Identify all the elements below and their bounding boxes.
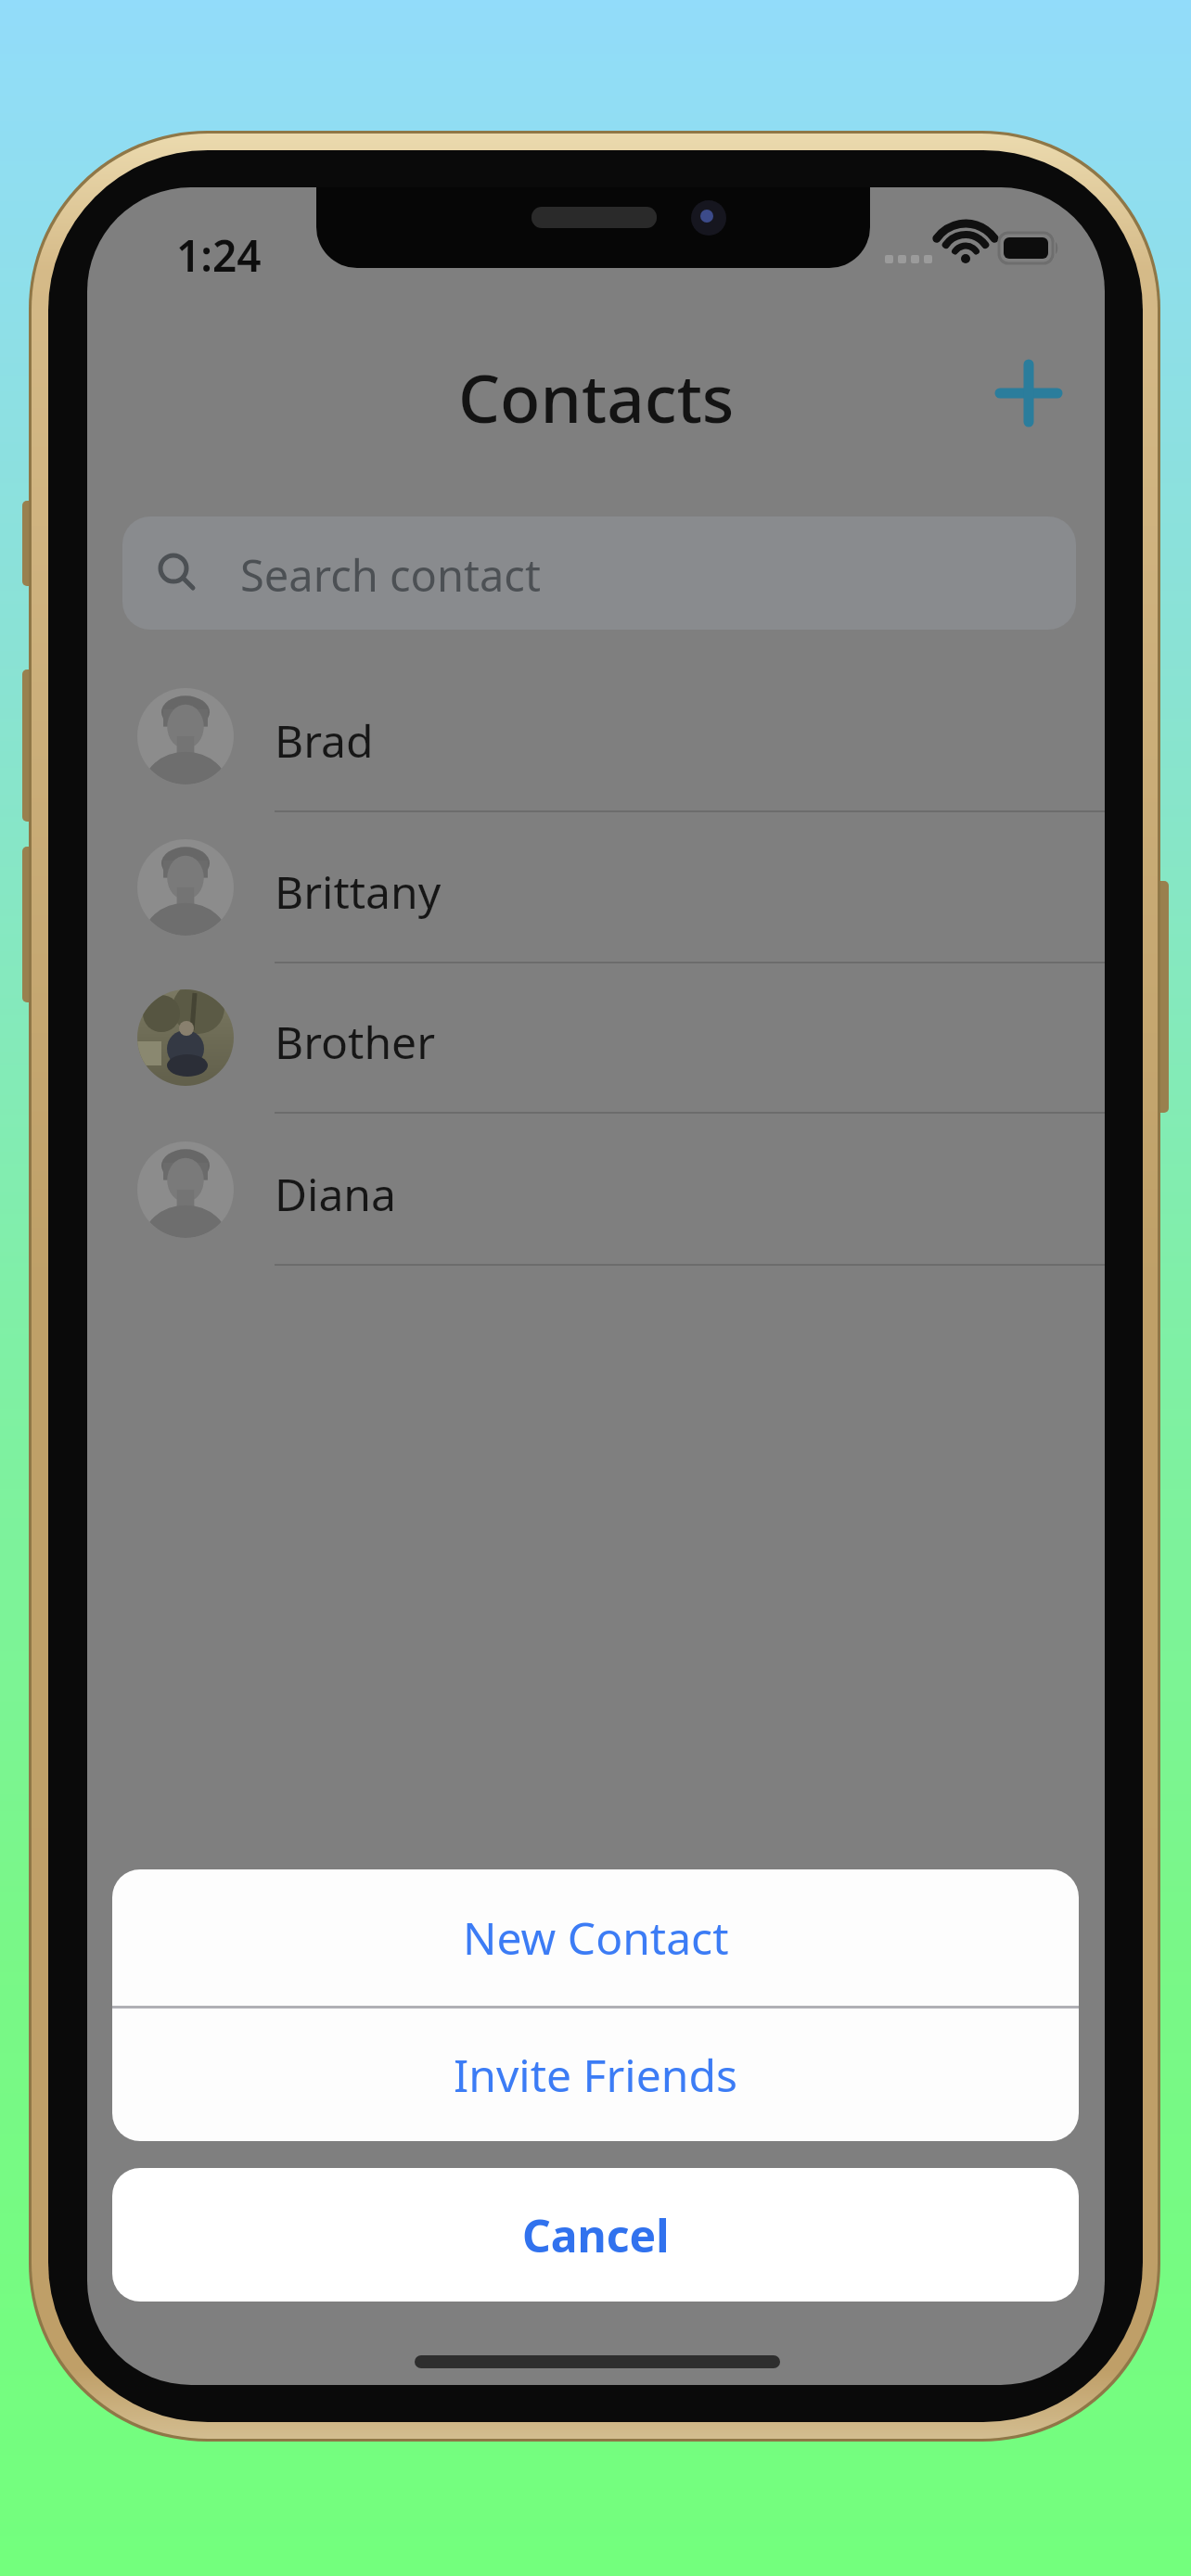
staticText: Search contact <box>240 545 541 605</box>
button[interactable]: Invite Friends <box>112 2009 1079 2141</box>
button[interactable]: Brittany <box>122 812 1105 963</box>
staticText: Brittany <box>275 861 442 922</box>
button[interactable]: Diana <box>122 1115 1105 1266</box>
staticText: Invite Friends <box>454 2045 737 2105</box>
button[interactable]: Search contact <box>122 516 1076 630</box>
button[interactable]: Cancel <box>112 2168 1079 2302</box>
staticText: Diana <box>275 1164 396 1224</box>
staticText: Cancel <box>522 2205 670 2265</box>
staticText: Contacts <box>458 352 735 436</box>
staticText: Brad <box>275 710 374 771</box>
button[interactable] <box>992 356 1066 430</box>
staticText: 1:24 <box>176 226 262 285</box>
button[interactable]: Brad <box>122 661 1105 812</box>
button[interactable]: Brother <box>122 963 1105 1114</box>
staticText: Brother <box>275 1012 435 1072</box>
staticText: New Contact <box>463 1907 729 1968</box>
button[interactable]: New Contact <box>112 1869 1079 2006</box>
